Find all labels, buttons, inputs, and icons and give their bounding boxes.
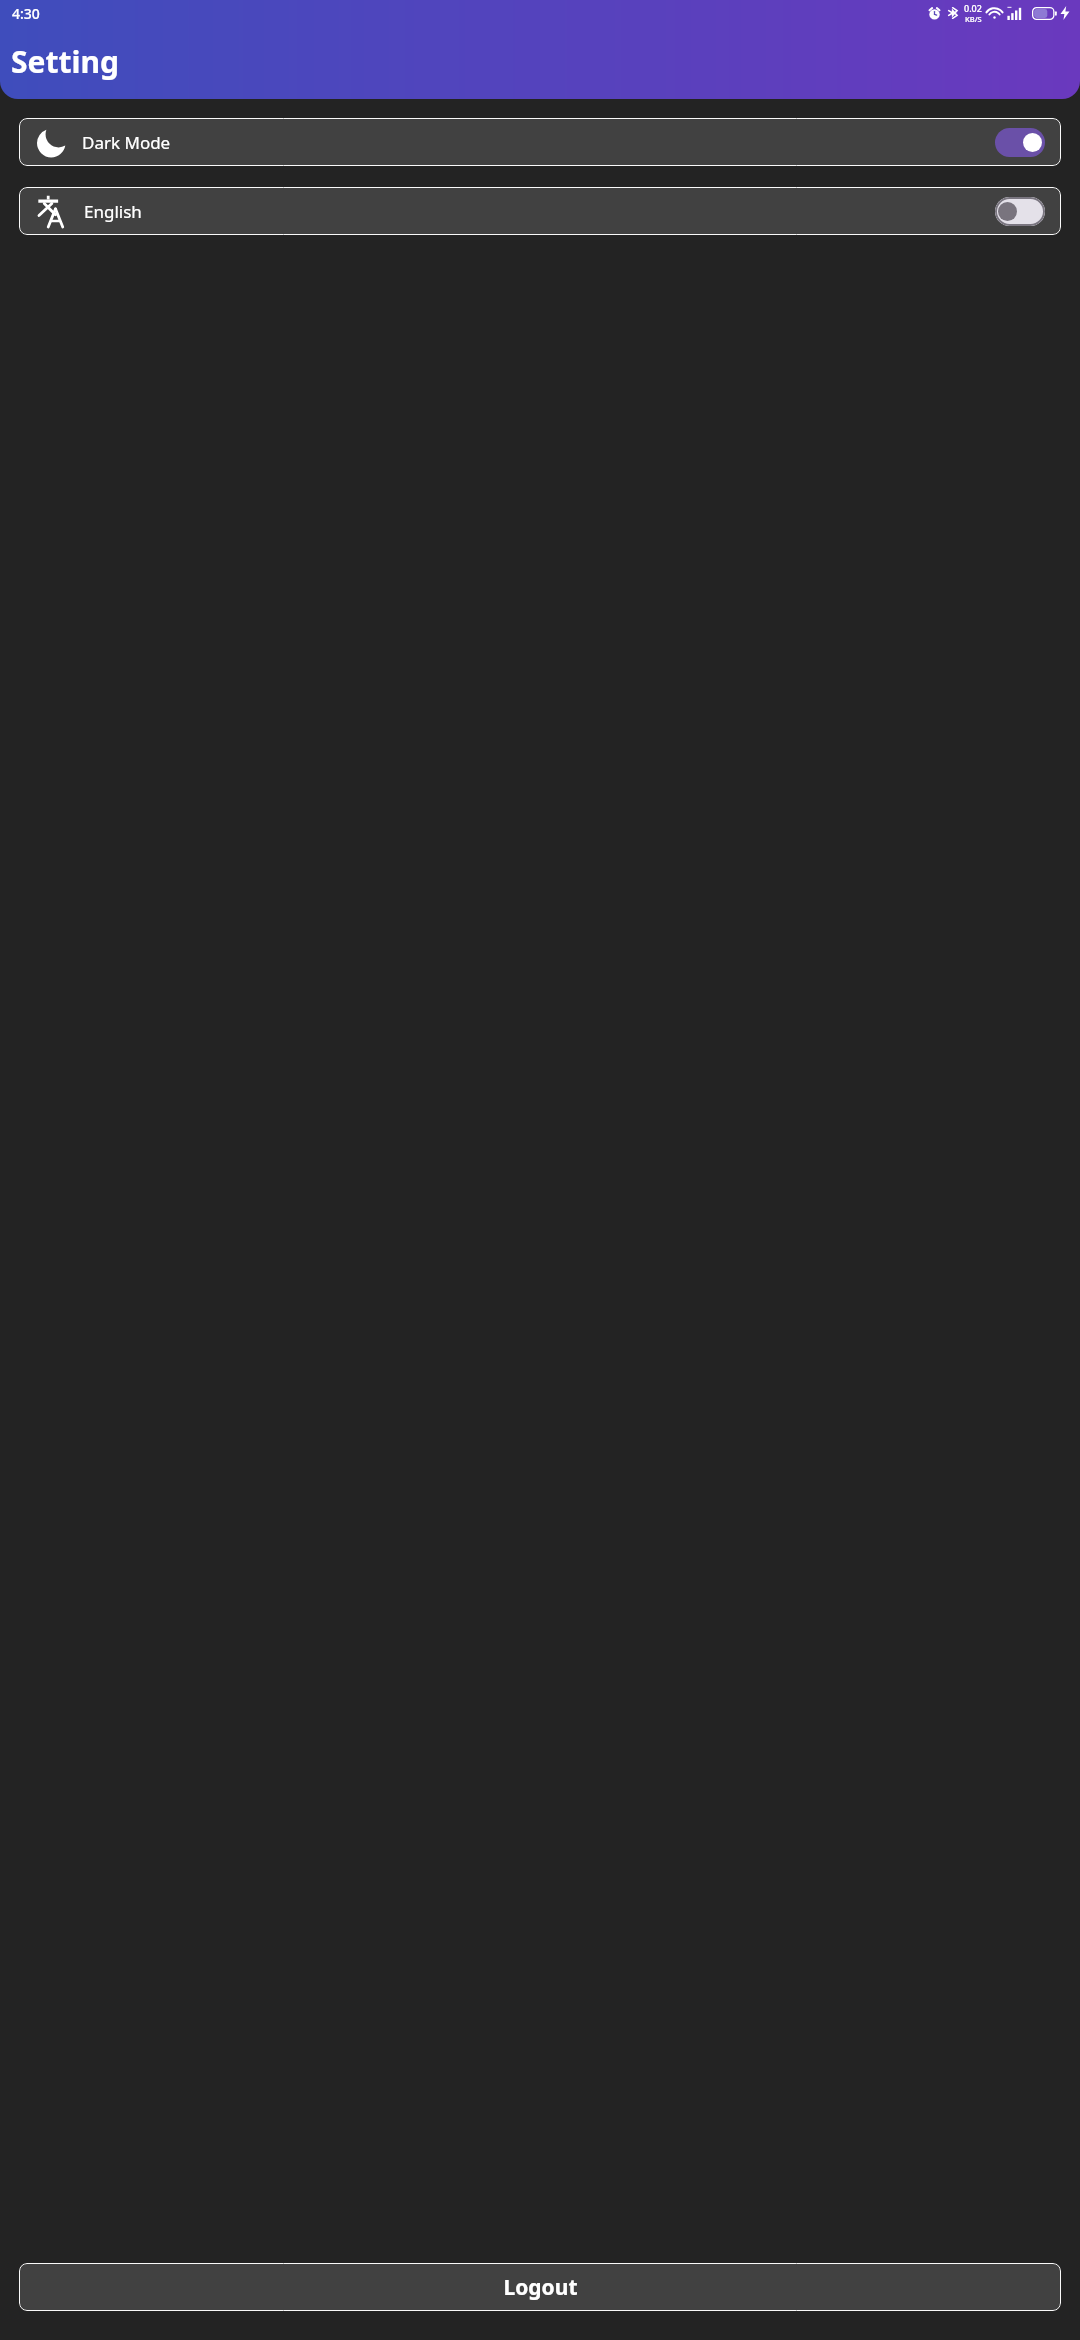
button[interactable]: Language xyxy=(19,187,1061,235)
button[interactable]: Logout xyxy=(19,2263,1061,2311)
staticText: 4:30 xyxy=(12,4,40,23)
staticText: Logout xyxy=(503,2273,578,2302)
other: Dark mode xyxy=(37,127,68,158)
staticText: 0.02 xyxy=(964,2,982,14)
other: Language xyxy=(37,195,70,228)
staticText: Dark Mode xyxy=(82,131,171,154)
staticText: Setting xyxy=(11,41,119,82)
staticText: KB/S xyxy=(965,14,982,24)
button[interactable]: Dark mode xyxy=(19,118,1061,166)
staticText: English xyxy=(84,200,142,223)
